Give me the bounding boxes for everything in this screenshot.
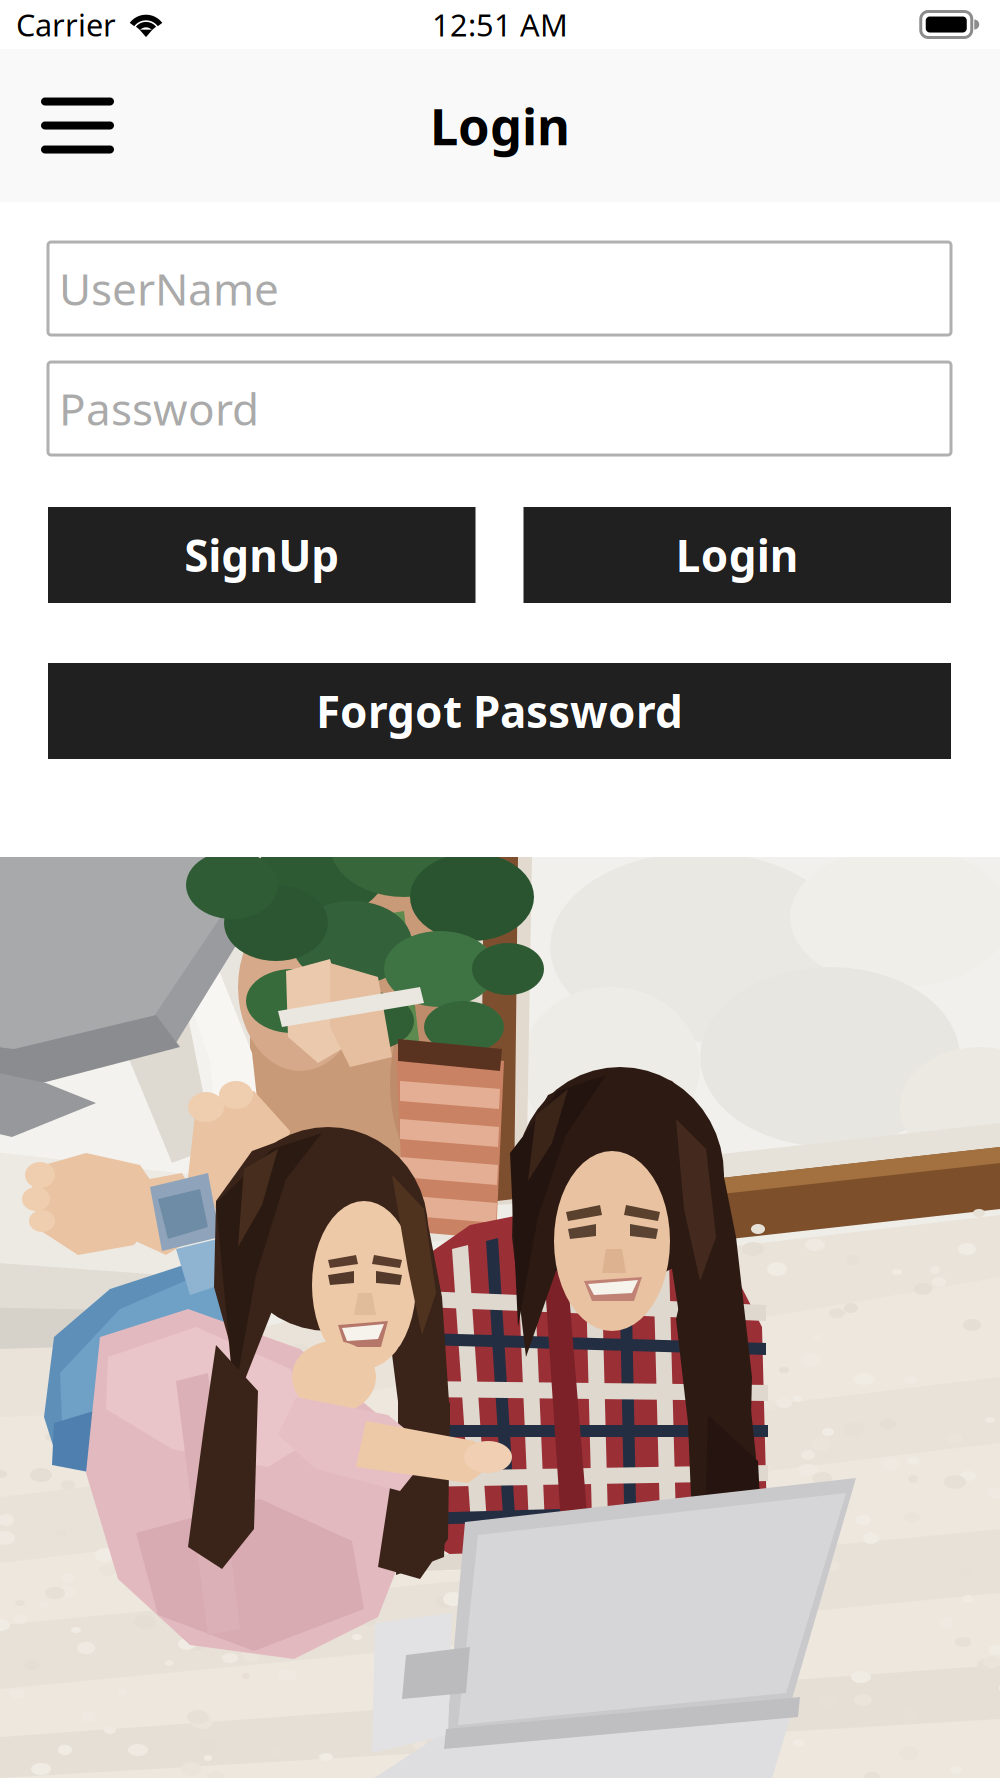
button[interactable]: Login: [523, 507, 951, 603]
button[interactable]: Menu: [0, 75, 136, 175]
button[interactable]: Forgot Password: [48, 663, 951, 759]
staticText: Carrier: [16, 4, 116, 45]
staticText: Login: [676, 526, 799, 584]
staticText: Forgot Password: [316, 682, 683, 740]
staticText: UserName: [59, 259, 279, 318]
staticText: Password: [59, 379, 259, 438]
button[interactable]: Password: [48, 362, 951, 455]
staticText: Login: [430, 92, 570, 159]
button[interactable]: SignUp: [48, 507, 475, 603]
staticText: SignUp: [184, 526, 339, 584]
staticText: 12:51 AM: [432, 4, 568, 45]
button[interactable]: UserName: [48, 242, 951, 335]
